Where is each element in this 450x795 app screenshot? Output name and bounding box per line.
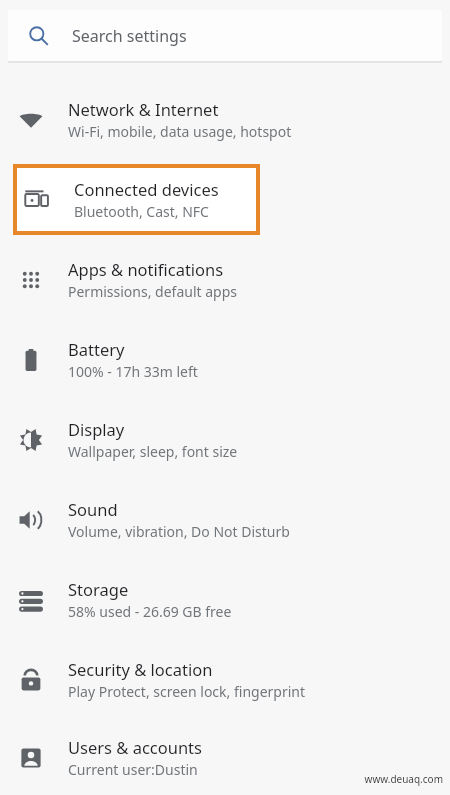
button[interactable]: Connected devices [17,168,256,231]
staticText: Play Protect, screen lock, fingerprint [68,682,306,701]
staticText: Permissions, default apps [68,282,238,301]
staticText: Wallpaper, sleep, font size [68,442,238,461]
staticText: Bluetooth, Cast, NFC [74,202,209,221]
staticText: 100% - 17h 33m left [68,362,198,381]
staticText: Security & location [68,658,213,680]
button[interactable]: Display [0,399,450,479]
button[interactable]: Security & location [0,639,450,719]
staticText: Connected devices [74,178,219,200]
staticText: Users & accounts [68,736,202,758]
button[interactable]: Network & Internet [0,79,450,159]
button[interactable]: Battery [0,319,450,399]
staticText: Volume, vibration, Do Not Disturb [68,522,290,541]
staticText: Network & Internet [68,98,219,120]
staticText: Search settings [72,25,187,47]
button[interactable]: Storage [0,559,450,639]
staticText: Sound [68,498,118,520]
staticText: Battery [68,338,125,360]
staticText: Display [68,418,125,440]
button[interactable]: Users & accounts [0,719,450,795]
staticText: Current user:Dustin [68,760,198,779]
button[interactable]: Apps & notifications [0,239,450,319]
staticText: Apps & notifications [68,258,224,280]
staticText: 58% used - 26.69 GB free [68,602,232,621]
staticText: Storage [68,578,129,600]
button[interactable]: Search settings [8,10,442,61]
staticText: Wi-Fi, mobile, data usage, hotspot [68,122,292,141]
button[interactable]: Sound [0,479,450,559]
staticText: www.deuaq.com [364,772,443,786]
